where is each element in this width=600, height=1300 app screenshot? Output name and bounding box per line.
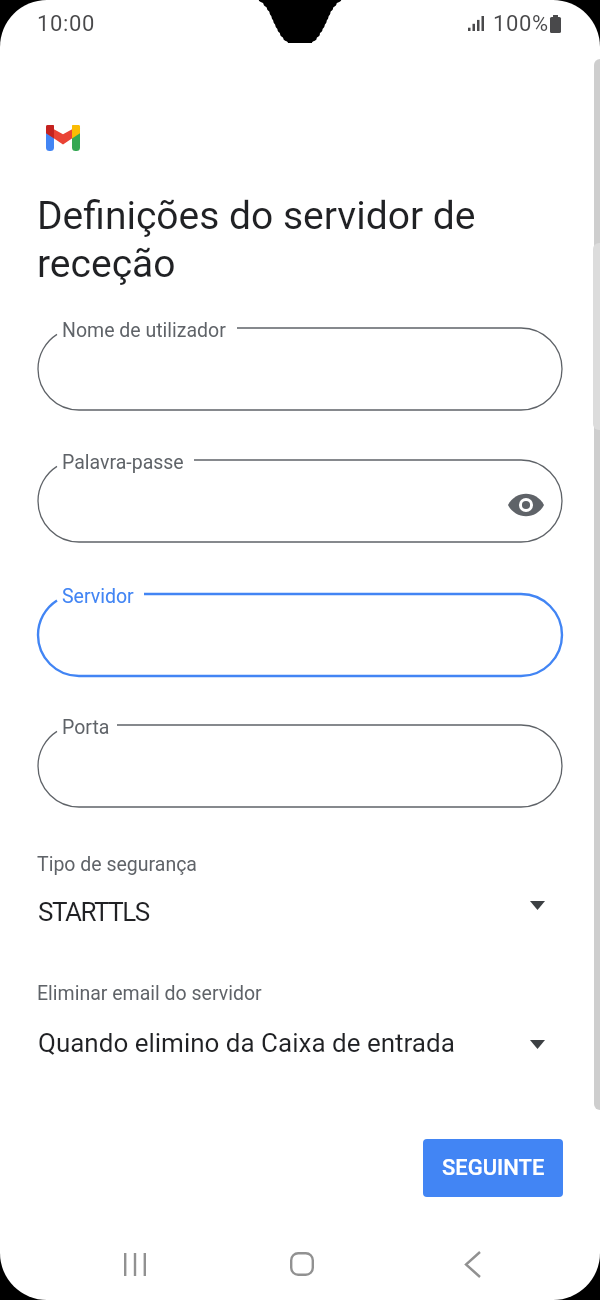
button[interactable]: Mostrar palavra-passe [502,477,550,525]
button[interactable]: Back [426,1228,516,1300]
button[interactable]: Home [257,1228,347,1300]
staticText: 10:00 [37,11,96,37]
staticText: 100% [493,11,549,37]
staticText: Porta [62,716,110,739]
button[interactable]: Nome de utilizador [38,328,562,410]
staticText: Servidor [62,585,134,608]
staticText: Nome de utilizador [62,319,226,342]
button[interactable]: SEGUINTE [423,1139,563,1197]
staticText: SEGUINTE [442,1155,545,1181]
button[interactable] [0,978,600,1068]
staticText: Definições do servidor de receção [37,193,492,287]
staticText: Palavra-passe [62,451,184,474]
staticText: STARTTLS [38,897,149,927]
staticText: Quando elimino da Caixa de entrada [38,1028,455,1058]
button[interactable]: Palavra-passe [38,460,562,542]
button[interactable]: Porta [38,725,562,807]
button[interactable] [0,849,600,929]
staticText: Eliminar email do servidor [37,982,262,1005]
button[interactable]: Recent apps [90,1228,180,1300]
staticText: Tipo de segurança [37,853,197,876]
button[interactable]: Servidor [38,594,562,676]
